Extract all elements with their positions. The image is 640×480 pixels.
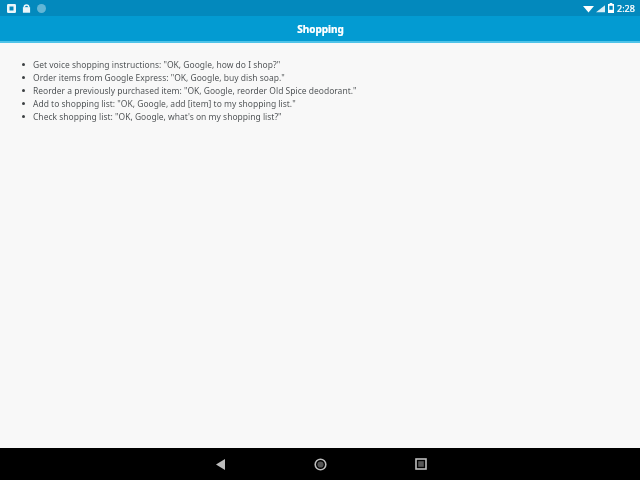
staticText: Shopping (297, 22, 344, 36)
button[interactable]: Recent apps (405, 448, 437, 480)
staticText: 2:28 (617, 2, 635, 14)
button[interactable]: Get voice shopping instructions: "OK, Go… (22, 58, 628, 71)
button[interactable]: Home (304, 448, 336, 480)
staticText: Add to shopping list: "OK, Google, add [… (33, 98, 296, 110)
button[interactable]: Add to shopping list: "OK, Google, add [… (22, 97, 628, 110)
button[interactable]: Check shopping list: "OK, Google, what's… (22, 110, 628, 123)
staticText: Check shopping list: "OK, Google, what's… (33, 111, 282, 123)
staticText: Get voice shopping instructions: "OK, Go… (33, 59, 281, 71)
button[interactable]: Order items from Google Express: "OK, Go… (22, 71, 628, 84)
button[interactable]: Back (204, 448, 236, 480)
button[interactable]: Reorder a previously purchased item: "OK… (22, 84, 628, 97)
staticText: Reorder a previously purchased item: "OK… (33, 85, 357, 97)
staticText: Order items from Google Express: "OK, Go… (33, 72, 285, 84)
